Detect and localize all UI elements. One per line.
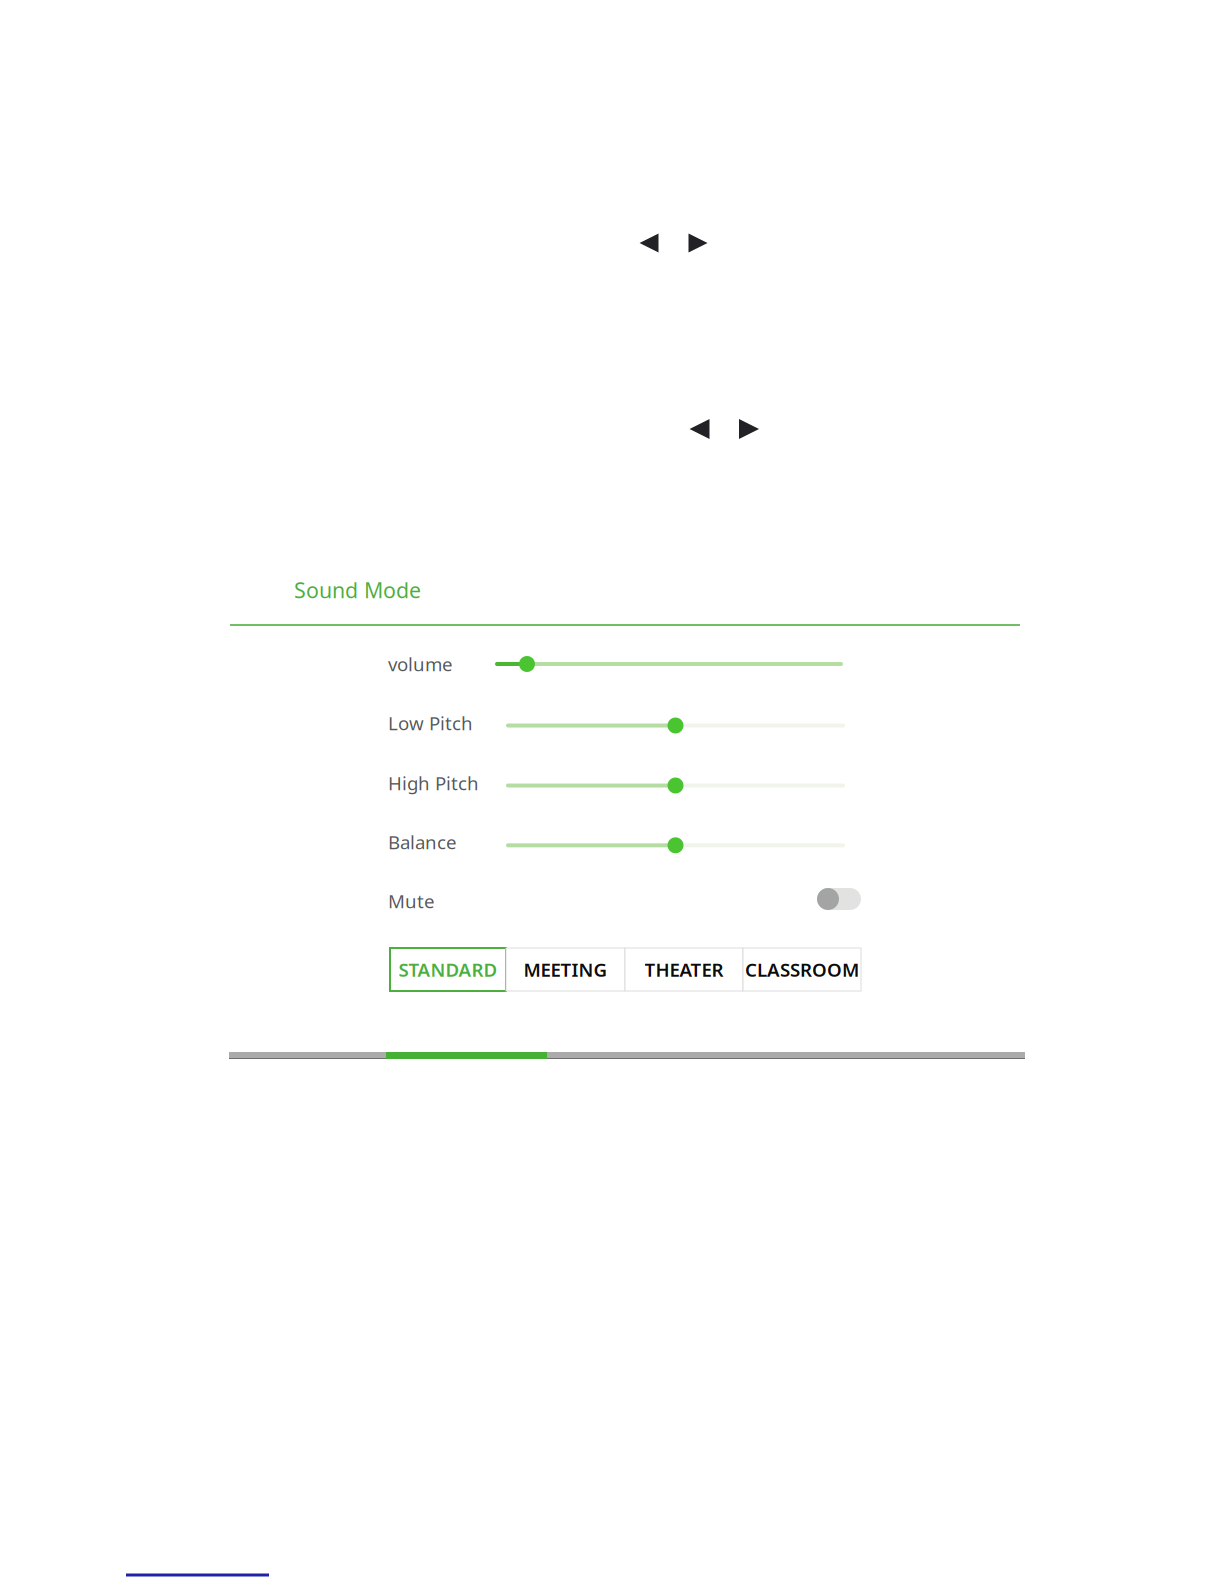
- button[interactable]: Balance: [506, 834, 845, 856]
- button[interactable]: Previous: [639, 233, 658, 252]
- button[interactable]: Low Pitch: [506, 714, 845, 736]
- staticText: Mute: [388, 889, 435, 913]
- staticText: STANDARD: [398, 957, 497, 982]
- staticText: Sound Mode: [294, 576, 421, 604]
- staticText: Balance: [388, 830, 457, 854]
- staticText: Low Pitch: [388, 711, 473, 735]
- button[interactable]: Mute: [817, 888, 861, 910]
- button[interactable]: High Pitch: [506, 774, 845, 796]
- button[interactable]: Next: [688, 233, 707, 252]
- staticText: CLASSROOM: [745, 957, 859, 982]
- staticText: THEATER: [644, 957, 723, 982]
- button[interactable]: volume: [495, 653, 843, 675]
- button[interactable]: Previous: [689, 419, 709, 439]
- staticText: MEETING: [523, 957, 607, 982]
- button[interactable]: STANDARD: [390, 948, 506, 991]
- button[interactable]: CLASSROOM: [743, 948, 861, 991]
- button[interactable]: Next: [739, 419, 759, 439]
- staticText: volume: [388, 652, 453, 676]
- staticText: High Pitch: [388, 771, 479, 795]
- button[interactable]: MEETING: [506, 948, 625, 991]
- button[interactable]: THEATER: [625, 948, 743, 991]
